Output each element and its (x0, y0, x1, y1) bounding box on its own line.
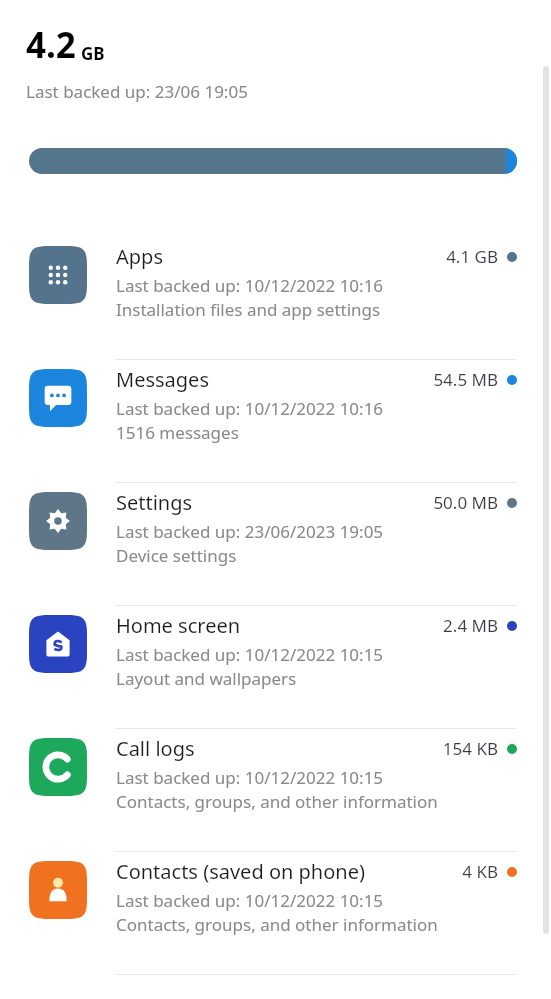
other: Settings (29, 492, 87, 550)
staticText: Home screen (116, 612, 241, 639)
other: Contacts (29, 861, 87, 919)
staticText: Contacts (saved on phone) (116, 858, 365, 885)
staticText: 4.1 GB (446, 245, 498, 268)
staticText: 154 KB (442, 737, 498, 760)
staticText: Last backed up: 10/12/2022 10:15 (116, 643, 384, 666)
staticText: Last backed up: 23/06 19:05 (26, 80, 248, 103)
staticText: Last backed up: 10/12/2022 10:16 (116, 397, 384, 420)
button[interactable]: Settings (0, 483, 551, 605)
staticText: Layout and wallpapers (116, 667, 297, 690)
staticText: 1516 messages (116, 421, 239, 444)
staticText: Messages (116, 366, 209, 393)
staticText: Call logs (116, 735, 195, 762)
staticText: 54.5 MB (433, 368, 498, 391)
other: Apps (29, 246, 87, 304)
staticText: 4 KB (462, 860, 498, 883)
button[interactable]: Contacts (0, 852, 551, 974)
staticText: Installation files and app settings (116, 298, 381, 321)
staticText: Last backed up: 10/12/2022 10:15 (116, 766, 384, 789)
button[interactable]: Home screen (0, 606, 551, 728)
staticText: Apps (116, 243, 163, 270)
other: Messages (29, 369, 87, 427)
other: Home screen (29, 615, 87, 673)
staticText: Settings (116, 489, 193, 516)
staticText: 2.4 MB (443, 614, 498, 637)
staticText: Device settings (116, 544, 237, 567)
button[interactable]: Call logs (0, 729, 551, 851)
other: Call logs (29, 738, 87, 796)
staticText: Last backed up: 10/12/2022 10:15 (116, 889, 384, 912)
button[interactable]: Messages (0, 360, 551, 482)
staticText: Last backed up: 10/12/2022 10:16 (116, 274, 384, 297)
staticText: 50.0 MB (433, 491, 498, 514)
button[interactable]: Apps (0, 237, 551, 359)
staticText: Last backed up: 23/06/2023 19:05 (116, 520, 384, 543)
staticText: Contacts, groups, and other information (116, 913, 438, 936)
staticText: Contacts, groups, and other information (116, 790, 438, 813)
staticText: 4.2 (26, 21, 76, 69)
staticText: GB (81, 42, 105, 65)
